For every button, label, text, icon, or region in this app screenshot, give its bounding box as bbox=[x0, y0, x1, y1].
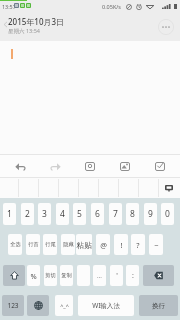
button[interactable]: Undo bbox=[5, 155, 35, 177]
button[interactable]: 0 bbox=[161, 203, 174, 225]
staticText: ^_^ bbox=[60, 302, 69, 309]
staticText: 复制 bbox=[61, 272, 72, 279]
staticText: 2 bbox=[25, 208, 30, 220]
staticText: ? bbox=[136, 240, 140, 250]
button[interactable] bbox=[140, 178, 160, 198]
staticText: % bbox=[30, 271, 37, 281]
staticText: ... bbox=[97, 272, 102, 280]
button[interactable]: Change language bbox=[27, 295, 49, 316]
button[interactable]: ... bbox=[93, 265, 106, 286]
staticText: 8 bbox=[130, 208, 135, 220]
button[interactable]: 9 bbox=[144, 203, 157, 225]
staticText: 剪切 bbox=[45, 272, 56, 279]
button[interactable]: 123 bbox=[2, 295, 24, 316]
button[interactable] bbox=[77, 265, 90, 286]
button[interactable]: 行首 bbox=[26, 234, 40, 255]
button[interactable]: Redo bbox=[40, 155, 70, 177]
button[interactable]: 4 bbox=[56, 203, 69, 225]
staticText: 5 bbox=[77, 208, 82, 220]
staticText: 123 bbox=[7, 301, 19, 310]
button[interactable]: More options bbox=[152, 13, 180, 41]
button[interactable] bbox=[60, 178, 80, 198]
button[interactable]: 全选 bbox=[8, 234, 22, 255]
staticText: 换行 bbox=[152, 302, 165, 310]
button[interactable]: 粘贴 bbox=[76, 234, 92, 255]
button[interactable]: 复制 bbox=[60, 265, 73, 286]
button[interactable]: 5 bbox=[73, 203, 86, 225]
button[interactable]: ! bbox=[114, 234, 128, 255]
button[interactable]: 7 bbox=[109, 203, 122, 225]
staticText: 3 bbox=[42, 208, 47, 220]
staticText: @ bbox=[100, 240, 107, 250]
staticText: 行尾 bbox=[45, 241, 56, 248]
staticText: 隐藏 bbox=[63, 241, 74, 248]
button[interactable]: ? bbox=[131, 234, 145, 255]
staticText: ' bbox=[116, 271, 118, 281]
button[interactable]: 1 bbox=[3, 203, 16, 225]
button[interactable] bbox=[100, 178, 120, 198]
staticText: 13:57 bbox=[2, 3, 16, 10]
button[interactable]: @ bbox=[96, 234, 110, 255]
button[interactable]: 行尾 bbox=[43, 234, 57, 255]
button[interactable]: 剪切 bbox=[44, 265, 57, 286]
staticText: 9 bbox=[148, 208, 153, 220]
staticText: ! bbox=[120, 240, 123, 250]
button[interactable]: Back bbox=[0, 13, 10, 35]
button[interactable] bbox=[0, 178, 20, 198]
staticText: 2015年10月3日 bbox=[8, 16, 65, 27]
staticText: 全选 bbox=[10, 241, 21, 248]
staticText: ~ bbox=[154, 240, 159, 250]
button[interactable]: 隐藏 bbox=[61, 234, 75, 255]
button[interactable]: Backspace bbox=[143, 265, 174, 286]
button[interactable] bbox=[40, 178, 60, 198]
staticText: 0.05K/s bbox=[102, 3, 121, 10]
staticText: : bbox=[132, 271, 134, 281]
staticText: 4 bbox=[60, 208, 65, 220]
button[interactable]: 8 bbox=[126, 203, 139, 225]
staticText: 6 bbox=[95, 208, 100, 220]
staticText: 0 bbox=[165, 208, 170, 220]
button[interactable]: 3 bbox=[38, 203, 51, 225]
button[interactable] bbox=[20, 178, 40, 198]
button[interactable]: 6 bbox=[91, 203, 104, 225]
button[interactable] bbox=[78, 234, 92, 255]
button[interactable] bbox=[120, 178, 140, 198]
button[interactable]: 2 bbox=[21, 203, 34, 225]
button[interactable]: : bbox=[126, 265, 139, 286]
staticText: 粘贴 bbox=[76, 240, 92, 250]
button[interactable]: Image bbox=[110, 155, 140, 177]
staticText: 星期六 13:54 bbox=[8, 27, 40, 35]
button[interactable]: ^_^ bbox=[55, 295, 73, 316]
button[interactable]: Input method settings bbox=[158, 178, 180, 198]
staticText: 7 bbox=[113, 208, 118, 220]
button[interactable]: ' bbox=[110, 265, 123, 286]
button[interactable]: WI输入法 bbox=[78, 295, 134, 316]
staticText: WI输入法 bbox=[92, 301, 120, 310]
staticText: 行首 bbox=[28, 241, 39, 248]
button[interactable]: Shift bbox=[3, 265, 25, 286]
button[interactable] bbox=[80, 178, 100, 198]
button[interactable]: % bbox=[27, 265, 40, 286]
staticText: 1 bbox=[7, 208, 12, 220]
button[interactable]: 换行 bbox=[139, 295, 178, 316]
button[interactable]: Checklist bbox=[145, 155, 175, 177]
button[interactable]: ~ bbox=[149, 234, 163, 255]
button[interactable]: Camera bbox=[75, 155, 105, 177]
